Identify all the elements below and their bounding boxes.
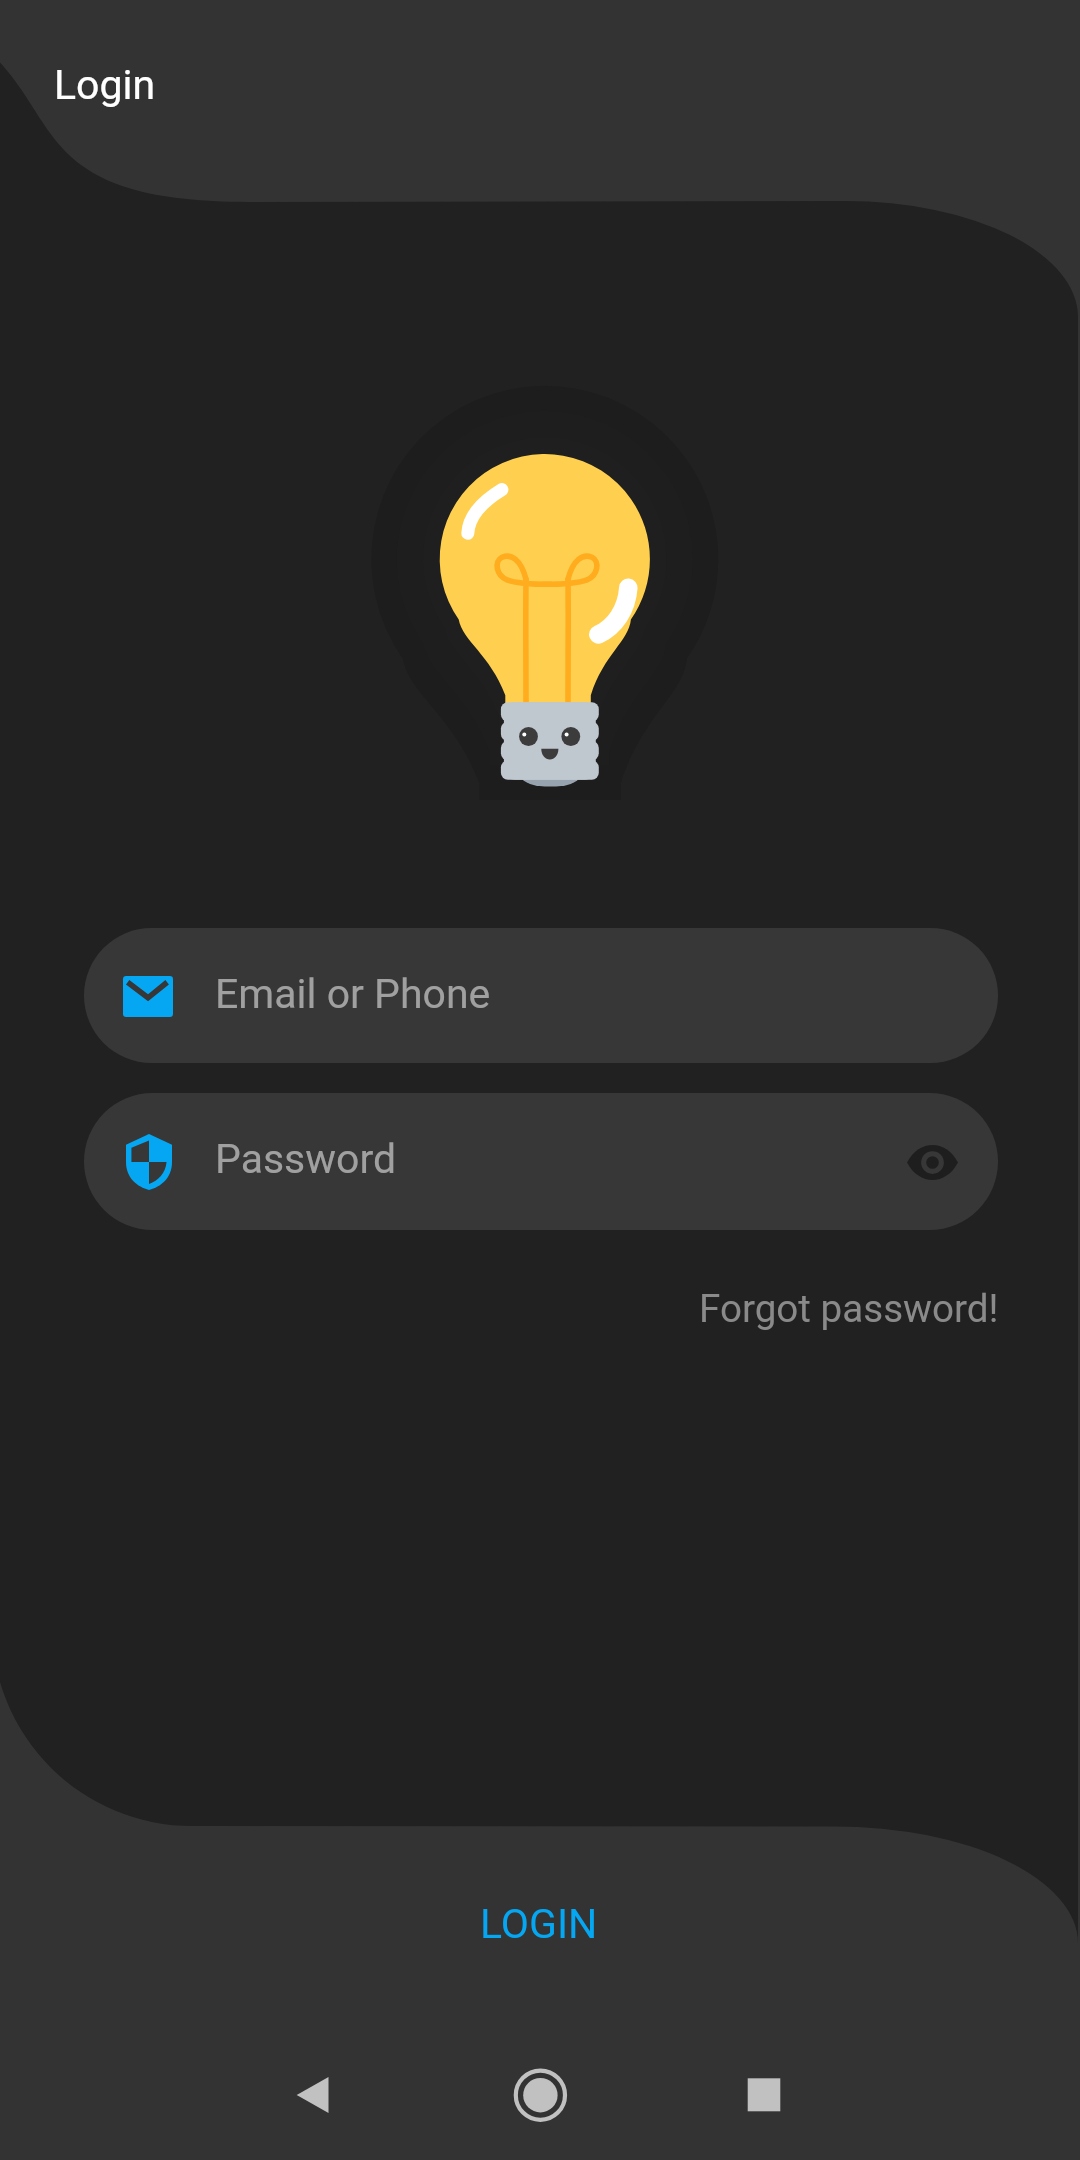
button[interactable]: Login	[20, 24, 170, 100]
staticText: Email or Phone	[215, 970, 491, 1018]
staticText: LOGIN	[480, 1900, 598, 1948]
button[interactable]: Forgot password!	[678, 1264, 998, 1342]
staticText: Login	[54, 61, 156, 109]
button[interactable]: Password	[84, 1093, 998, 1230]
button[interactable]: LOGIN	[0, 1848, 1080, 1998]
staticText: Password	[215, 1135, 397, 1183]
staticText: Forgot password!	[699, 1286, 999, 1331]
button[interactable]: Email or Phone	[84, 928, 998, 1063]
button[interactable]: Show password	[879, 1109, 985, 1215]
